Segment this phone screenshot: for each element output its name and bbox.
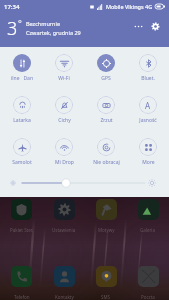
button[interactable]: Motywy xyxy=(85,199,127,233)
button[interactable]: Wi-Fi xyxy=(43,54,85,96)
staticText: Mobile Vikings 4G xyxy=(106,3,153,10)
button[interactable]: Samolot xyxy=(0,138,43,180)
staticText: Kontakty xyxy=(55,294,74,300)
staticText: Mi Drop xyxy=(55,159,74,166)
staticText: Cichy xyxy=(58,117,71,124)
button[interactable]: Zrzut xyxy=(85,96,127,138)
button[interactable]: GPS xyxy=(85,54,127,96)
staticText: ° xyxy=(18,17,22,29)
staticText: Bluet. xyxy=(141,75,155,82)
button[interactable]: Kontakty xyxy=(43,266,85,300)
staticText: 3 xyxy=(7,16,18,41)
button[interactable]: A xyxy=(127,96,169,138)
staticText: More xyxy=(142,159,155,166)
staticText: Poczta xyxy=(141,294,155,300)
button[interactable]: Galeria xyxy=(127,199,169,233)
staticText: Motywy xyxy=(98,227,115,233)
button[interactable]: Ustawienia xyxy=(43,199,85,233)
staticText: Samolot xyxy=(12,159,32,166)
button[interactable]: More xyxy=(127,138,169,180)
staticText: A xyxy=(145,100,151,111)
staticText: 17:34 xyxy=(4,3,20,11)
button[interactable]: Poczta xyxy=(127,266,169,300)
staticText: Jasność xyxy=(139,117,157,124)
button[interactable]: Bluet. xyxy=(127,54,169,96)
staticText: Pakiet Ster. xyxy=(10,227,34,233)
staticText: Bezchmurnie xyxy=(26,20,60,27)
button[interactable]: Cichy xyxy=(43,96,85,138)
button[interactable]: Settings xyxy=(148,19,162,33)
button[interactable]: Pakiet Ster. xyxy=(0,199,43,233)
button[interactable]: Nie obracaj xyxy=(85,138,127,180)
staticText: Latarka xyxy=(13,117,31,124)
staticText: Galeria xyxy=(140,227,156,233)
staticText: SMS xyxy=(101,294,111,300)
staticText: Ustawienia xyxy=(52,227,76,233)
button[interactable]: Brightness xyxy=(0,175,169,191)
staticText: ilne Dan xyxy=(11,75,33,82)
staticText: Zrzut xyxy=(100,117,113,124)
button[interactable]: ilne Dan xyxy=(0,54,43,96)
button[interactable]: Mi Drop xyxy=(43,138,85,180)
staticText: Nie obracaj xyxy=(93,159,120,166)
button[interactable]: SMS xyxy=(85,266,127,300)
button[interactable]: More options xyxy=(131,19,145,33)
staticText: Wi-Fi xyxy=(58,75,70,82)
staticText: GPS xyxy=(101,75,111,82)
staticText: Telefon xyxy=(14,294,30,300)
button[interactable]: Telefon xyxy=(0,266,43,300)
button[interactable]: Latarka xyxy=(0,96,43,138)
staticText: Czwartek, grudnia 29 xyxy=(26,29,81,36)
